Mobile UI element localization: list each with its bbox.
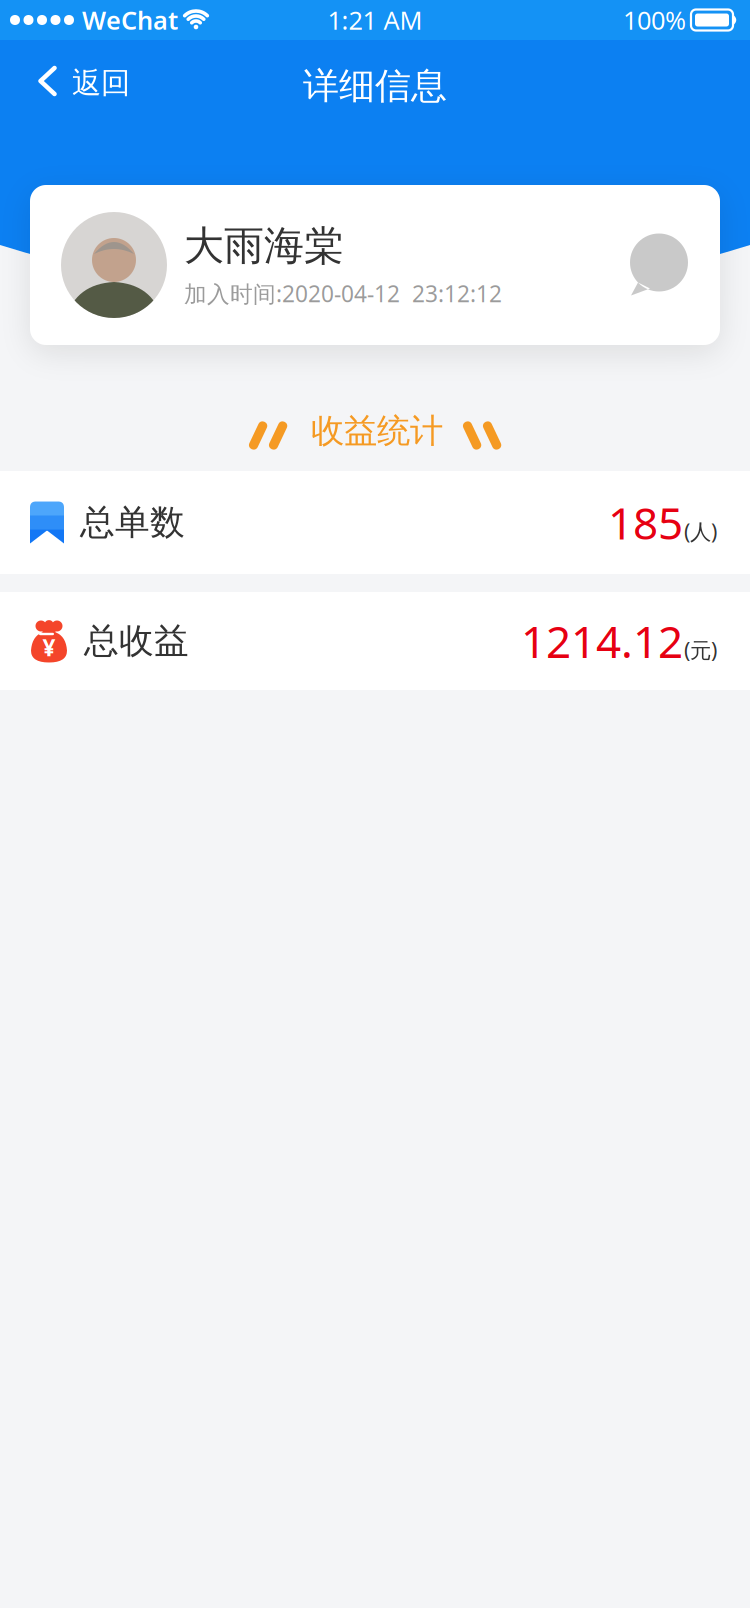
staticText: 185	[608, 493, 683, 552]
staticText: ¥	[42, 632, 55, 662]
staticText: (元)	[684, 636, 717, 664]
staticText: 详细信息	[303, 64, 447, 108]
staticText: 加入时间:2020-04-12 23:12:12	[184, 278, 502, 309]
staticText: 大雨海棠	[184, 221, 344, 270]
button[interactable]: 发消息	[628, 233, 720, 296]
staticText: 100%	[623, 3, 686, 37]
staticText: (人)	[684, 517, 717, 545]
staticText: 1:21 AM	[327, 3, 422, 37]
staticText: WeChat	[82, 3, 178, 37]
staticText: 总收益	[84, 620, 189, 662]
staticText: 返回	[72, 65, 130, 101]
staticText: 1214.12	[521, 612, 683, 670]
staticText: 总单数	[80, 501, 185, 544]
staticText: 收益统计	[311, 410, 443, 451]
button[interactable]: 返回	[0, 56, 130, 116]
